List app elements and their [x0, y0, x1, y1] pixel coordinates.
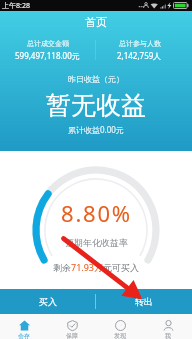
staticText: 我 [165, 332, 171, 339]
button[interactable]: 转出 [96, 289, 192, 314]
staticText: 预期年化收益率 [65, 237, 128, 248]
staticText: 发现 [114, 332, 126, 339]
staticText: 上午8:28 [2, 1, 30, 11]
staticText: 599,497,118.00元 [15, 50, 80, 61]
staticText: 累计收益0.00元 [68, 124, 124, 135]
button[interactable]: 买入 [0, 289, 95, 314]
staticText: 首页 [85, 15, 107, 29]
staticText: 总计成交金额 [27, 39, 69, 48]
staticText: 昨日收益（元） [68, 74, 124, 84]
staticText: 保障 [66, 332, 78, 339]
staticText: 总计参与人数 [119, 39, 161, 48]
staticText: 转出 [135, 296, 153, 307]
staticText: 买入 [39, 296, 57, 307]
staticText: 2,142,759人 [117, 50, 162, 61]
staticText: 会存 [18, 332, 30, 339]
staticText: 剩余71.93万元可买入 [53, 261, 140, 273]
button[interactable]: Profile [144, 314, 192, 339]
staticText: 8.80% [61, 198, 132, 228]
button[interactable]: Discover [96, 314, 144, 339]
button[interactable]: Home [0, 314, 48, 339]
button[interactable]: Protection [48, 314, 96, 339]
staticText: 暂无收益 [46, 90, 146, 121]
